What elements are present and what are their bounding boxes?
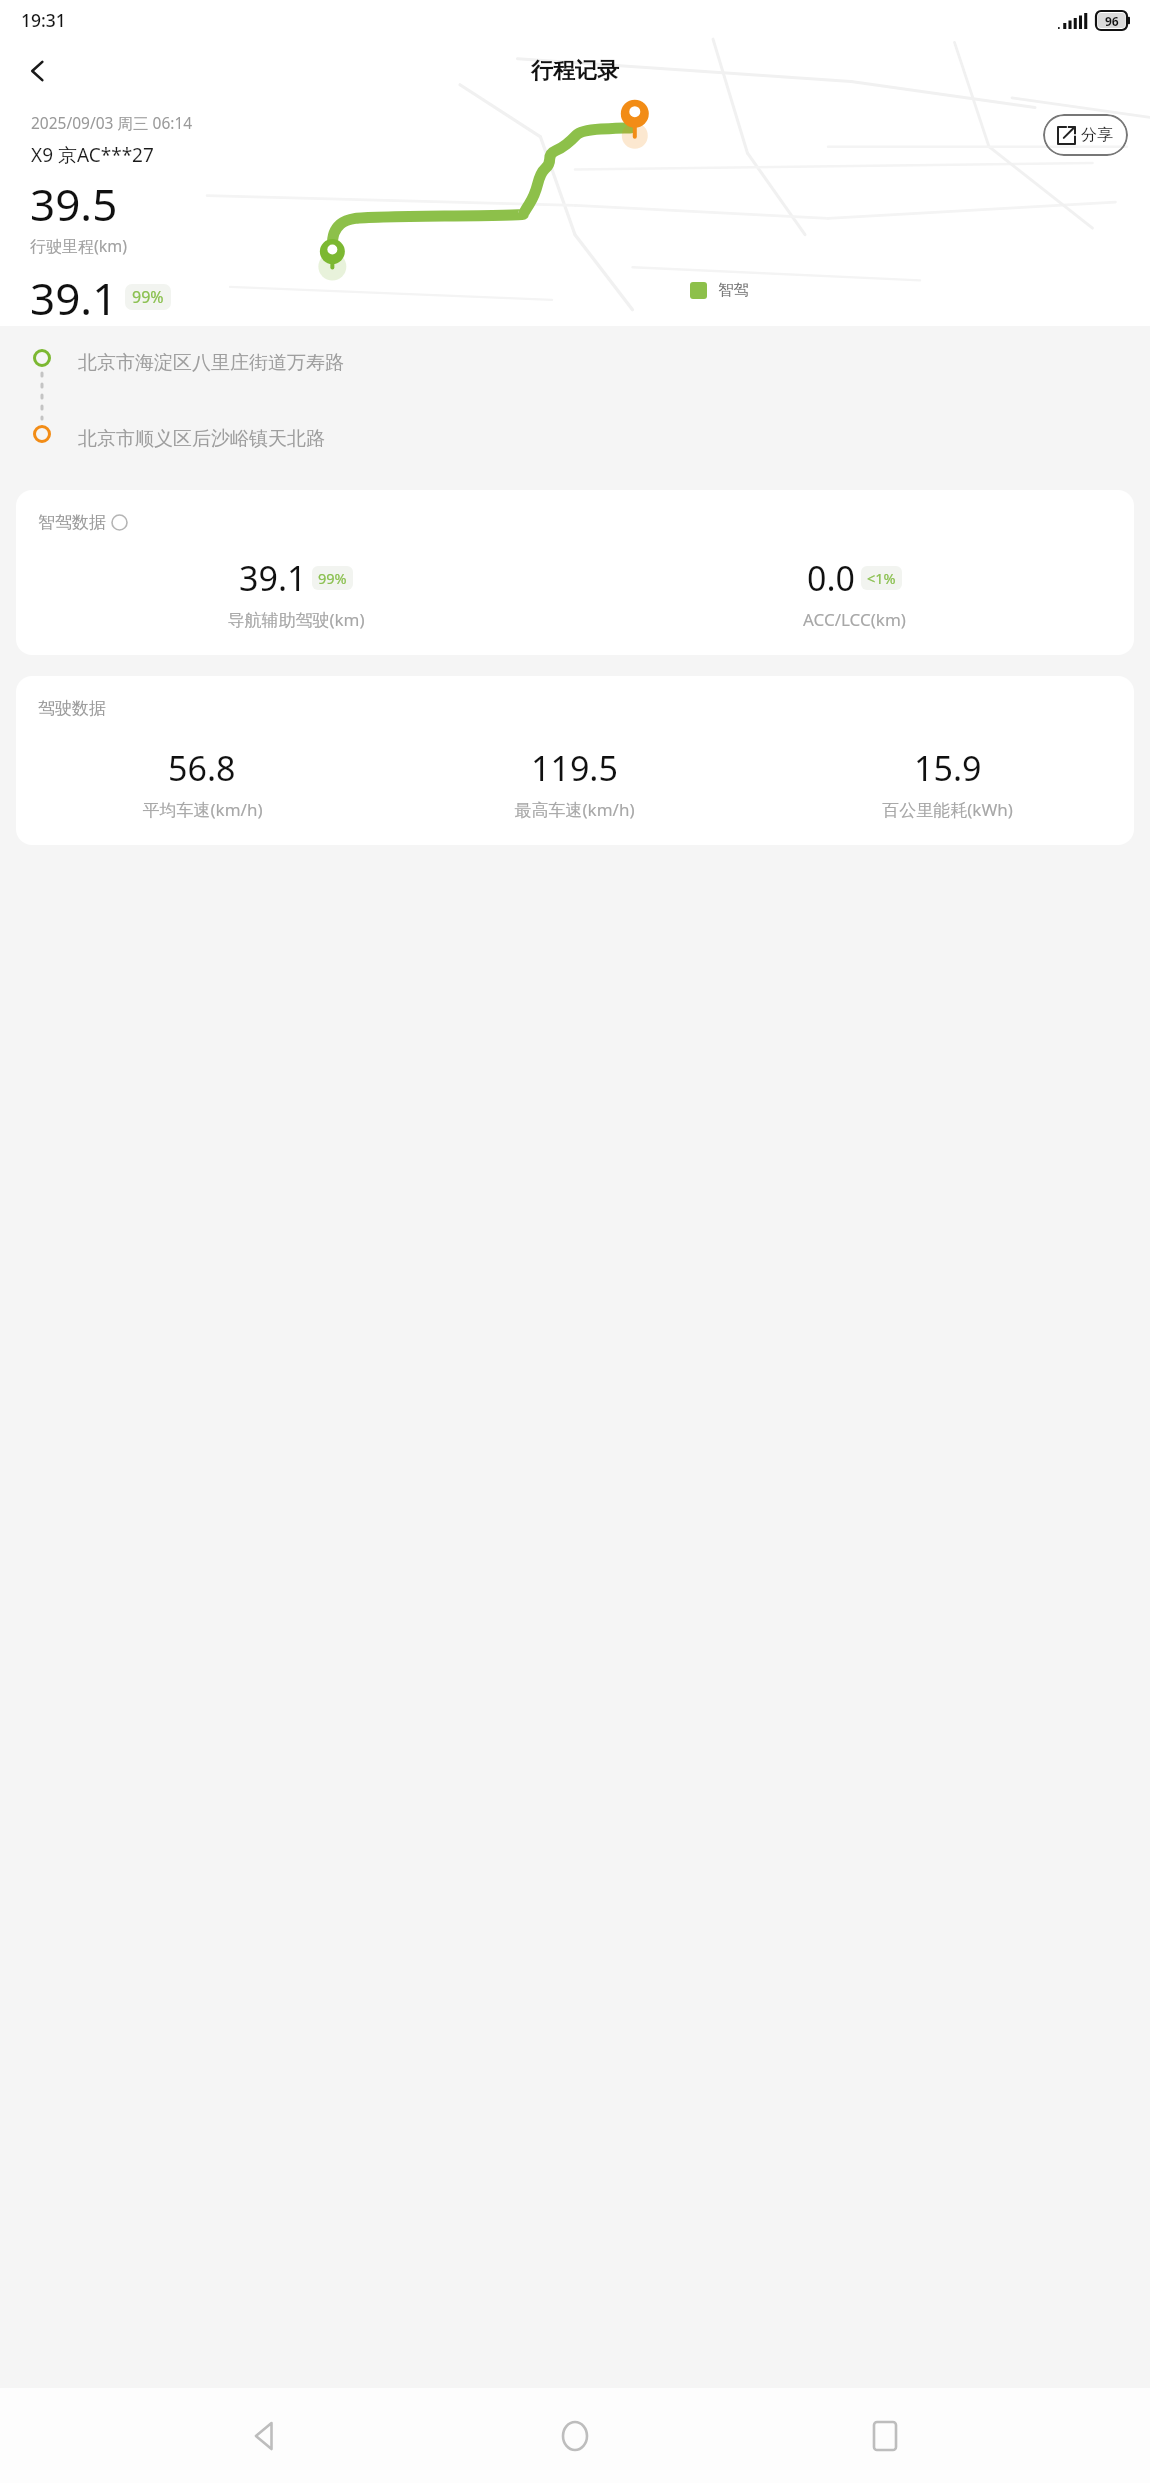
staticText: 分享 bbox=[1081, 125, 1113, 145]
button[interactable]: 驾驶数据 bbox=[16, 676, 1134, 845]
staticText: 北京市顺义区后沙峪镇天北路 bbox=[78, 427, 325, 451]
staticText: 平均车速(km/h) bbox=[142, 798, 263, 821]
staticText: 智驾 bbox=[718, 280, 749, 300]
button[interactable]: Home bbox=[530, 2391, 620, 2481]
staticText: 最高车速(km/h) bbox=[514, 798, 635, 821]
staticText: 智驾数据 bbox=[38, 512, 106, 533]
staticText: ACC/LCC(km) bbox=[803, 608, 906, 631]
button[interactable]: 智驾数据 bbox=[16, 490, 1134, 655]
staticText: 百公里能耗(kWh) bbox=[882, 798, 1013, 821]
staticText: 驾驶数据 bbox=[38, 698, 106, 719]
staticText: 96 bbox=[1105, 13, 1119, 29]
staticText: <1% bbox=[867, 568, 896, 588]
staticText: 行程记录 bbox=[531, 57, 619, 85]
staticText: 56.8 bbox=[168, 745, 236, 791]
button[interactable]: Recent apps bbox=[840, 2391, 930, 2481]
staticText: 行驶里程(km) bbox=[30, 235, 128, 257]
button[interactable]: Back bbox=[8, 41, 68, 101]
button[interactable]: 分享 bbox=[1043, 114, 1128, 156]
staticText: 39.1 bbox=[30, 268, 118, 326]
staticText: 99% bbox=[318, 568, 347, 588]
staticText: 19:31 bbox=[21, 8, 66, 32]
staticText: 39.5 bbox=[30, 174, 118, 234]
staticText: 119.5 bbox=[531, 745, 618, 791]
staticText: 15.9 bbox=[914, 745, 982, 791]
staticText: 0.0 bbox=[807, 555, 856, 601]
staticText: 39.1 bbox=[239, 555, 307, 601]
staticText: 2025/09/03 周三 06:14 bbox=[31, 112, 193, 133]
button[interactable]: Back bbox=[220, 2391, 310, 2481]
staticText: 北京市海淀区八里庄街道万寿路 bbox=[78, 351, 344, 375]
staticText: X9 京AC***27 bbox=[31, 142, 154, 168]
staticText: 99% bbox=[132, 286, 164, 308]
staticText: 导航辅助驾驶(km) bbox=[227, 608, 365, 631]
